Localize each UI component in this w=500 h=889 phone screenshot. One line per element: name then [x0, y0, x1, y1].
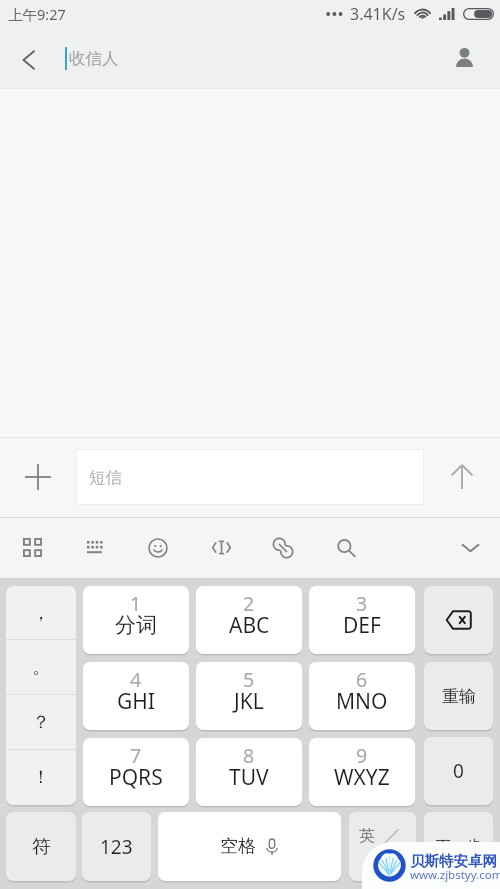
staticText: 6 — [356, 666, 368, 693]
button[interactable]: Emoji — [126, 517, 190, 578]
staticText: 2 — [243, 590, 255, 617]
button[interactable]: 1 — [83, 586, 189, 654]
staticText: 3 — [356, 590, 368, 617]
staticText: 4 — [130, 666, 142, 693]
button[interactable]: Back — [0, 28, 57, 89]
button[interactable]: 2 — [196, 586, 302, 654]
staticText: DEF — [343, 611, 381, 640]
button[interactable]: ！ — [6, 750, 76, 805]
staticText: ， — [32, 602, 50, 625]
staticText: 重输 — [442, 686, 476, 707]
button[interactable]: Keyboard — [64, 517, 128, 578]
staticText: JKL — [234, 687, 264, 716]
button[interactable]: 。 — [6, 640, 76, 695]
button[interactable]: 5 — [196, 662, 302, 730]
button[interactable]: 6 — [309, 662, 415, 730]
button[interactable]: ， — [6, 586, 76, 640]
button[interactable]: 4 — [83, 662, 189, 730]
staticText: 。 — [32, 656, 50, 679]
staticText: 贝斯特安卓网 — [410, 852, 497, 870]
button[interactable]: Hide keyboard — [440, 517, 500, 578]
button[interactable]: 123 — [82, 812, 151, 881]
button[interactable]: 符 — [6, 812, 76, 881]
button[interactable]: Search — [314, 517, 378, 578]
staticText: MNO — [336, 687, 388, 716]
staticText: 1 — [130, 590, 142, 617]
staticText: ！ — [32, 766, 50, 789]
button[interactable]: 空格 — [158, 812, 341, 881]
button[interactable]: 8 — [196, 738, 302, 806]
button[interactable]: 重输 — [424, 662, 493, 730]
staticText: 空格 — [220, 835, 256, 858]
staticText: 9 — [356, 742, 368, 769]
staticText: ABC — [229, 611, 270, 640]
staticText: 下一步 — [436, 837, 481, 856]
button[interactable]: Add attachment — [0, 437, 76, 517]
staticText: 分词 — [115, 612, 157, 638]
button[interactable]: 9 — [309, 738, 415, 806]
button[interactable]: Attach — [251, 517, 315, 578]
staticText: www.zjbstyy.com — [410, 867, 500, 883]
button[interactable]: 3 — [309, 586, 415, 654]
button[interactable]: Send — [424, 437, 500, 517]
button[interactable]: 下一步 — [424, 812, 493, 881]
staticText: 短信 — [89, 467, 122, 488]
button[interactable]: Contacts — [428, 28, 500, 89]
button[interactable]: 0 — [424, 737, 493, 805]
staticText: 0 — [453, 758, 464, 784]
staticText: 8 — [243, 742, 255, 769]
staticText: 收信人 — [69, 48, 119, 69]
button[interactable]: Delete — [424, 586, 493, 654]
staticText: 上午9:27 — [8, 4, 66, 24]
staticText: 123 — [100, 834, 133, 860]
staticText: 符 — [32, 835, 51, 859]
staticText: WXYZ — [334, 763, 390, 792]
button[interactable]: ？ — [6, 695, 76, 750]
staticText: PQRS — [109, 763, 163, 792]
staticText: 5 — [243, 666, 255, 693]
staticText: 中 — [390, 847, 406, 867]
staticText: 7 — [130, 742, 142, 769]
staticText: 英 — [359, 826, 375, 846]
button[interactable]: 英 — [349, 812, 416, 881]
staticText: GHI — [117, 687, 155, 716]
button[interactable]: 短信 — [77, 450, 423, 504]
staticText: ？ — [32, 711, 50, 734]
button[interactable]: Apps — [0, 517, 64, 578]
staticText: TUV — [229, 763, 269, 792]
button[interactable]: Text cursor — [189, 517, 253, 578]
staticText: 3.41K/s — [350, 3, 406, 25]
button[interactable]: 7 — [83, 738, 189, 806]
